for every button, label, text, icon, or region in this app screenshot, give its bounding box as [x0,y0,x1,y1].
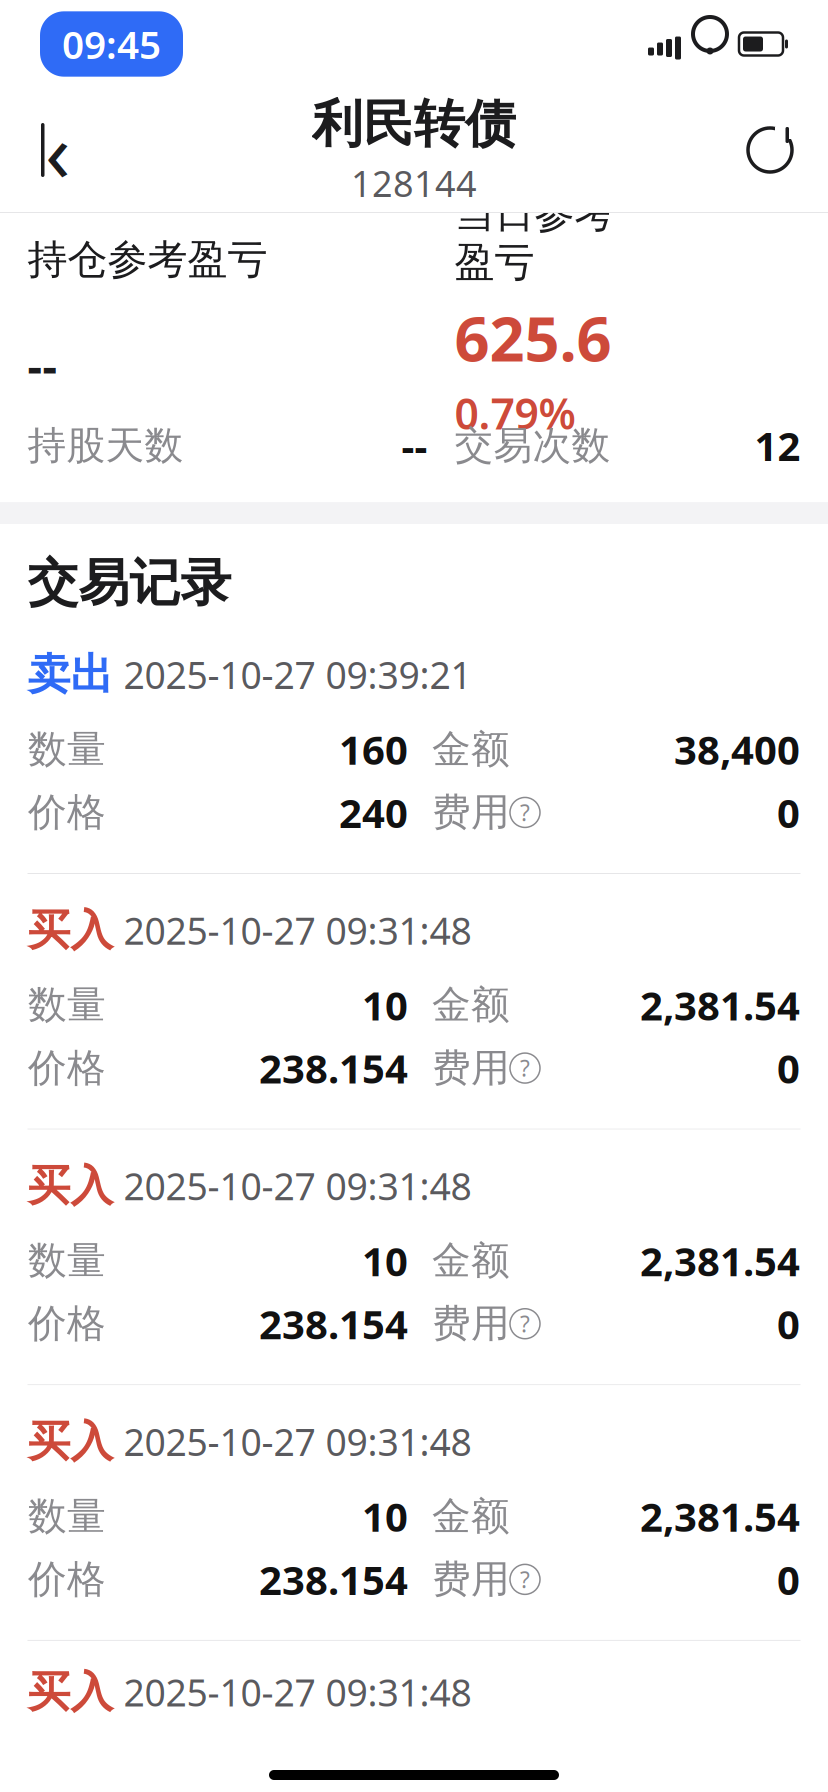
staticText: 价格 [28,789,106,836]
staticText: 金额 [432,981,510,1029]
staticText: ‹ [45,95,71,205]
staticText: ? [520,1053,530,1083]
staticText: 2,381.54 [640,1234,800,1287]
staticText: 价格 [28,1044,106,1092]
staticText: 09:45 [62,18,161,70]
staticText: 数量 [28,726,106,773]
staticText: 费用 [432,1556,510,1603]
button[interactable]: 买入 [0,1385,828,1640]
staticText: 当日参考盈亏 [454,189,614,287]
button[interactable]: 买入 [0,874,828,1129]
staticText: 2025-10-27 09:31:48 [123,1161,471,1211]
staticText: 数量 [28,1492,106,1540]
staticText: 10 [362,1490,408,1543]
staticText: 利民转债 [312,93,516,155]
staticText: 金额 [432,1237,510,1284]
button[interactable]: Refresh [730,110,810,190]
staticText: 费用 [432,789,510,836]
staticText: 价格 [28,1556,106,1603]
staticText: 持股天数 [27,422,183,469]
staticText: 费用 [432,1300,510,1347]
staticText: 0.79% [454,384,575,441]
staticText: 交易记录 [27,552,231,614]
staticText: 买入 [27,904,113,956]
staticText: 2025-10-27 09:31:48 [123,1417,471,1466]
staticText: ? [520,1564,530,1594]
staticText: 2025-10-27 09:39:21 [123,650,471,699]
staticText: 金额 [432,1492,510,1540]
staticText: 数量 [28,1237,106,1284]
staticText: 买入 [27,1415,113,1468]
staticText: 买入 [27,1160,113,1212]
staticText: 0 [777,1297,800,1350]
staticText: 240 [339,786,408,839]
button[interactable]: 卖出 [0,618,828,873]
staticText: 128144 [351,159,477,207]
staticText: 0 [777,1041,800,1095]
button[interactable]: Back [18,110,98,190]
staticText: 持仓参考盈亏 [27,235,267,284]
staticText: -- [27,335,57,395]
staticText: 2,381.54 [640,1490,800,1543]
staticText: 价格 [28,1300,106,1347]
staticText: 交易次数 [454,422,610,469]
staticText: 0 [777,786,800,839]
staticText: 12 [754,419,800,472]
staticText: 金额 [432,726,510,773]
staticText: 238.154 [259,1297,408,1350]
staticText: ? [520,1309,530,1339]
staticText: ? [520,797,530,827]
staticText: 2025-10-27 09:31:48 [123,905,471,955]
button[interactable]: 买入 [0,1641,828,1713]
button[interactable]: 买入 [0,1130,828,1384]
staticText: 0 [777,1553,800,1606]
staticText: 卖出 [27,648,113,701]
staticText: 238.154 [259,1553,408,1606]
staticText: -- [401,419,427,472]
staticText: 160 [339,723,408,776]
staticText: 2,381.54 [640,978,800,1031]
staticText: 费用 [432,1044,510,1092]
staticText: 10 [362,978,408,1031]
staticText: 625.6 [454,297,611,378]
staticText: 10 [362,1234,408,1287]
staticText: 38,400 [674,723,800,776]
staticText: 数量 [28,981,106,1029]
staticText: 买入 [27,1666,113,1718]
staticText: 2025-10-27 09:31:48 [123,1667,471,1717]
staticText: 238.154 [259,1041,408,1095]
